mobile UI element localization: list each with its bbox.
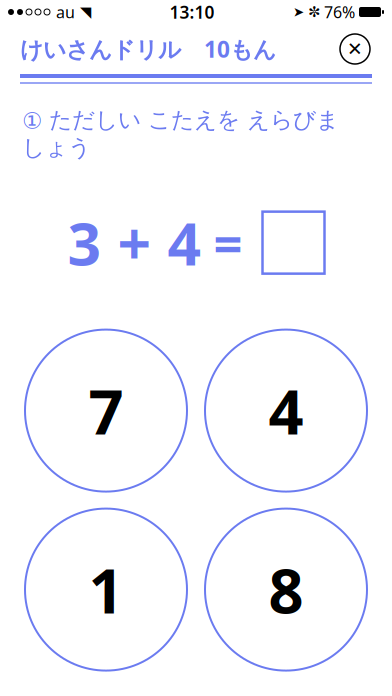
staticText: ✕ xyxy=(347,38,363,60)
button[interactable]: Close xyxy=(338,32,372,66)
staticText: ① ただしい こたえを えらびましょう xyxy=(22,106,339,162)
staticText: 76% xyxy=(324,1,355,23)
button[interactable]: 4 xyxy=(205,330,367,492)
staticText: ◥ xyxy=(80,4,91,20)
button[interactable]: 1 xyxy=(25,509,187,671)
button[interactable]: 7 xyxy=(25,330,187,492)
staticText: ✼ xyxy=(308,4,320,20)
staticText: けいさんドリル 10もん xyxy=(20,34,276,64)
button[interactable]: 8 xyxy=(205,509,367,671)
staticText: 4 xyxy=(167,204,201,282)
staticText: 8 xyxy=(268,549,303,630)
staticText: 13:10 xyxy=(169,0,214,23)
staticText: 4 xyxy=(268,370,303,451)
staticText: 1 xyxy=(88,549,123,630)
staticText: ➤ xyxy=(293,4,304,19)
staticText: = xyxy=(213,209,242,276)
staticText: + xyxy=(117,204,151,282)
staticText: 7 xyxy=(88,370,123,451)
staticText: au xyxy=(56,1,75,23)
staticText: 3 xyxy=(67,204,101,282)
